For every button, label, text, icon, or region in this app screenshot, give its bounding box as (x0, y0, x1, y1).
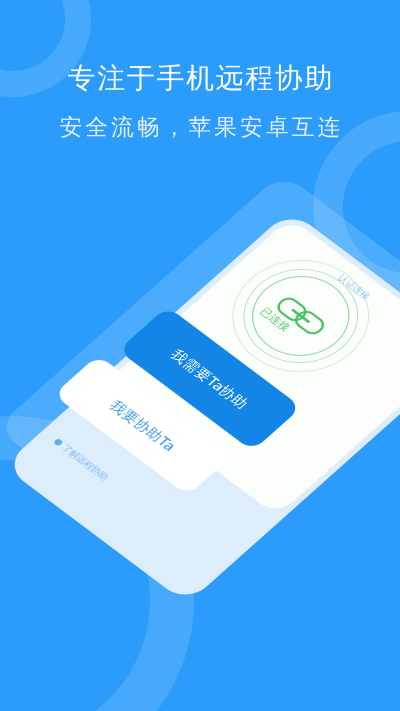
staticText: 专注于手机远程协助 (68, 61, 332, 95)
staticText: 我要协助Ta (46, 20, 121, 40)
button[interactable]: 了解远程协助 (0, 0, 400, 711)
button[interactable]: 我要协助Ta (0, 0, 400, 711)
staticText: 了解远程协助 (10, 0, 64, 11)
staticText: 我需要Ta协助 (39, 23, 129, 43)
staticText: 安全流畅，苹果安卓互连 (59, 113, 340, 141)
button[interactable]: 我需要Ta协助 (0, 0, 400, 711)
